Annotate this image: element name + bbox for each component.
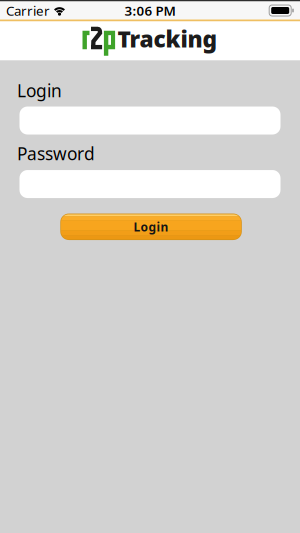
button[interactable]: Password text field [0,170,300,198]
staticText: Tracking [117,24,217,54]
button[interactable]: Login [60,213,242,240]
staticText: Carrier [6,2,50,19]
button[interactable]: Login text field [0,106,300,134]
staticText: Login [134,219,169,235]
staticText: 3:06 PM [124,2,175,19]
staticText: Login [17,79,62,102]
staticText: Password [17,142,95,165]
